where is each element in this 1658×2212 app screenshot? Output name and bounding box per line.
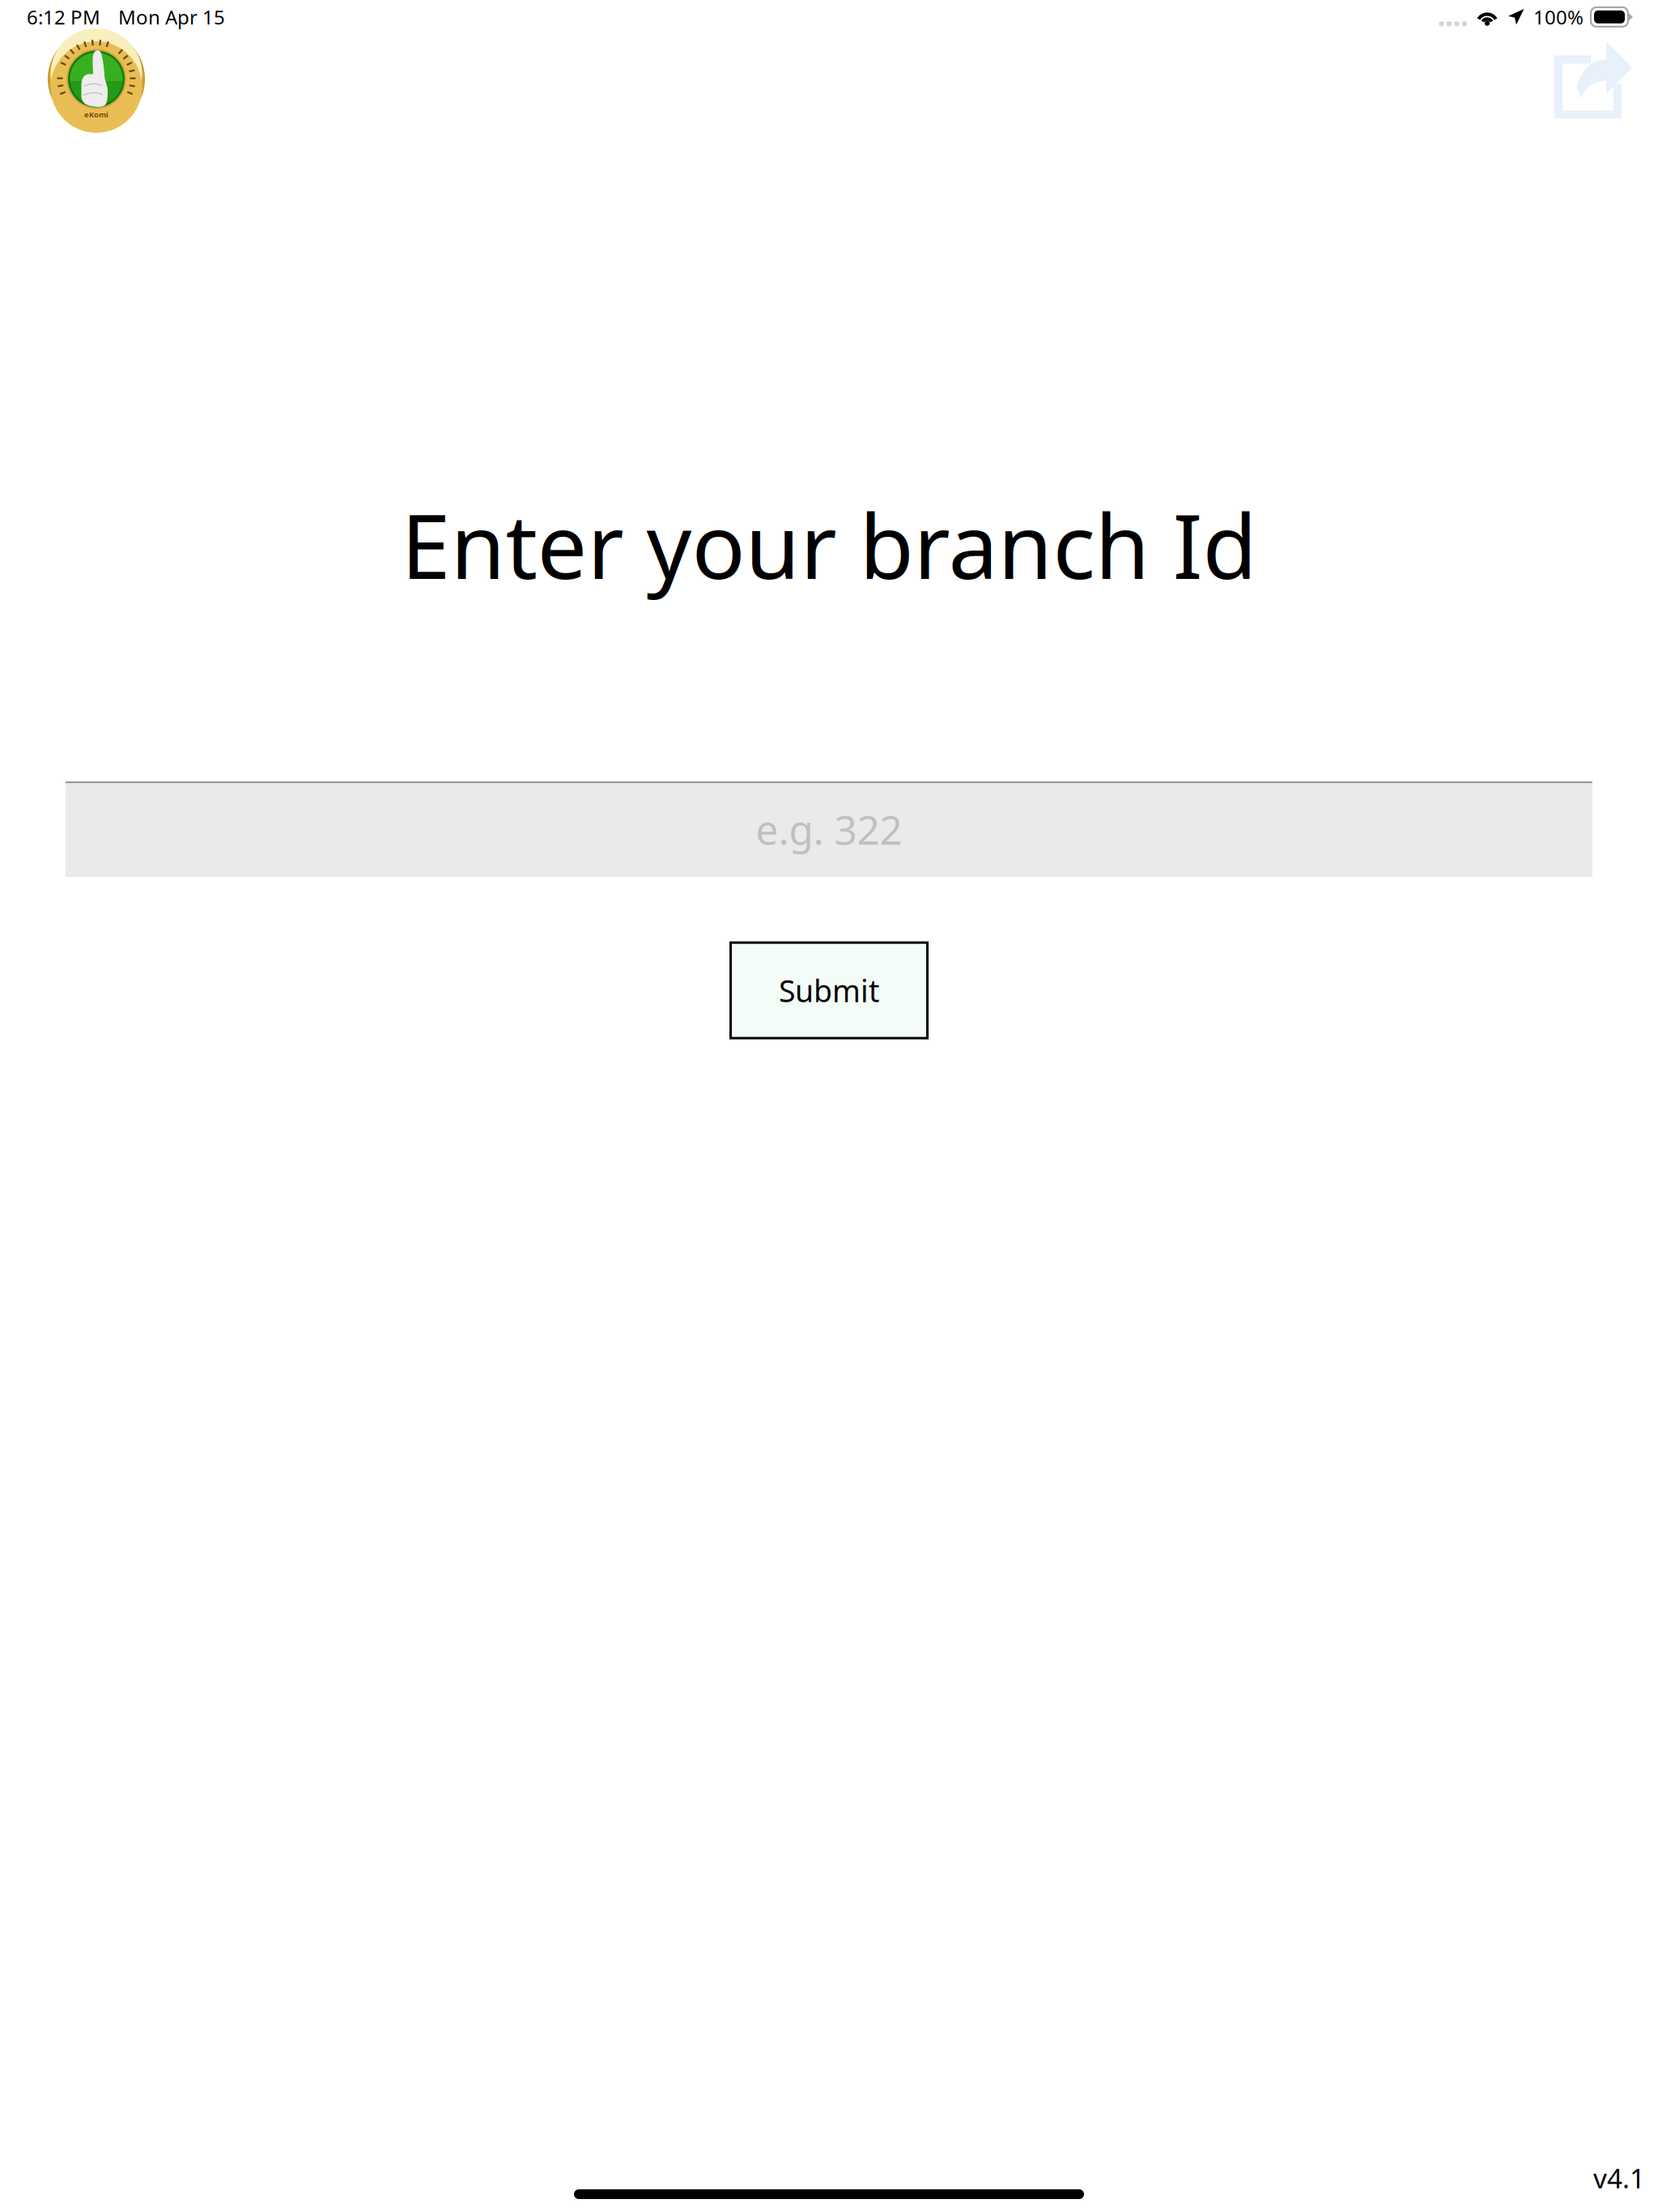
staticText: 100%	[1533, 4, 1584, 30]
button[interactable]: Submit	[731, 943, 927, 1038]
button[interactable]: Share	[1540, 30, 1658, 133]
staticText: eKomi	[84, 109, 108, 119]
staticText: 6:12 PM	[27, 4, 100, 30]
staticText: Enter your branch Id	[401, 486, 1257, 603]
staticText: e.g. 322	[756, 803, 902, 856]
button[interactable]: e.g. 322	[66, 781, 1592, 877]
staticText: v4.1	[1593, 2160, 1645, 2196]
staticText: Mon Apr 15	[118, 4, 225, 30]
staticText: Submit	[779, 970, 879, 1010]
